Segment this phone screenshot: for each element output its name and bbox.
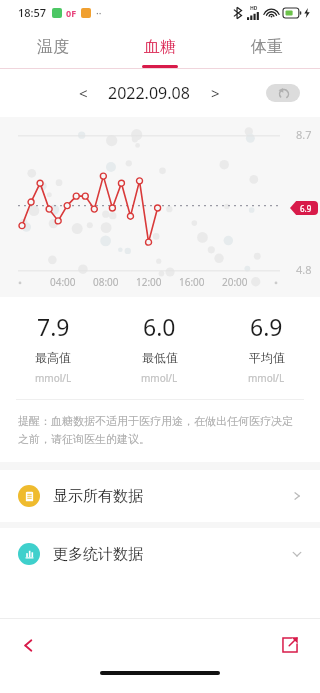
staticText: 08:00 <box>93 275 119 289</box>
staticText: 4.8 <box>296 262 312 277</box>
staticText: 平均值 <box>249 350 285 365</box>
staticText: 显示所有数据 <box>53 487 143 506</box>
button[interactable]: Share <box>272 627 308 663</box>
staticText: 2022.09.08 <box>108 82 190 104</box>
staticText: 18:57 <box>18 5 47 20</box>
staticText: 最高值 <box>35 350 71 365</box>
button[interactable]: Refresh <box>266 84 300 102</box>
button[interactable]: Next day <box>200 78 230 108</box>
button[interactable]: 温度 <box>0 24 106 69</box>
staticText: 6.0 <box>143 311 176 342</box>
staticText: 6.9 <box>250 311 283 342</box>
staticText: > <box>211 83 220 103</box>
button[interactable]: 更多统计数据 <box>0 528 320 580</box>
staticText: 12:00 <box>136 275 162 289</box>
staticText: 温度 <box>37 37 69 57</box>
button[interactable]: 显示所有数据 <box>0 470 320 522</box>
staticText: 体重 <box>251 37 283 57</box>
button[interactable]: Back <box>10 627 46 663</box>
button[interactable]: 血糖 <box>106 24 213 69</box>
staticText: mmol/L <box>248 371 285 385</box>
button[interactable]: 体重 <box>213 24 320 69</box>
staticText: 20:00 <box>222 275 248 289</box>
staticText: 血糖 <box>144 37 176 57</box>
staticText: 更多统计数据 <box>53 545 143 564</box>
staticText: 0F <box>66 7 77 19</box>
staticText: 8.7 <box>296 127 312 142</box>
staticText: 7.9 <box>37 311 70 342</box>
staticText: mmol/L <box>35 371 72 385</box>
staticText: mmol/L <box>141 371 178 385</box>
staticText: 6.9 <box>300 203 312 214</box>
staticText: 04:00 <box>50 275 76 289</box>
staticText: 最低值 <box>142 350 178 365</box>
staticText: 16:00 <box>179 275 205 289</box>
staticText: HD <box>250 5 258 12</box>
button[interactable]: Previous day <box>68 78 98 108</box>
staticText: ·· <box>96 6 102 20</box>
staticText: 提醒：血糖数据不适用于医疗用途，在做出任何医疗决定之前，请征询医生的建议。 <box>18 414 302 446</box>
staticText: < <box>79 83 88 103</box>
